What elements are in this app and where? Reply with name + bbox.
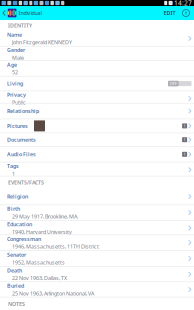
button[interactable]: Education bbox=[0, 221, 194, 235]
button[interactable]: Pictures bbox=[0, 119, 194, 133]
staticText: 1940, Harvard University bbox=[12, 228, 72, 235]
staticText: EDIT bbox=[163, 9, 175, 17]
button[interactable]: Age bbox=[0, 61, 194, 76]
staticText: EVENTS/FACTS bbox=[8, 179, 44, 186]
button[interactable]: Back bbox=[0, 6, 8, 20]
staticText: Pictures bbox=[7, 122, 28, 129]
staticText: 1 bbox=[184, 152, 186, 157]
button[interactable]: Birth bbox=[0, 205, 194, 221]
staticText: 1946, Massachusetts, 11TH District bbox=[12, 243, 99, 250]
button[interactable]: Congressman bbox=[0, 235, 194, 251]
button[interactable]: Name bbox=[0, 31, 194, 46]
staticText: NOTES bbox=[8, 300, 25, 307]
button[interactable]: Religion bbox=[0, 188, 194, 205]
staticText: Gender bbox=[7, 46, 25, 54]
staticText: Tags bbox=[7, 162, 19, 169]
button[interactable]: Gender bbox=[0, 46, 194, 61]
staticText: Privacy bbox=[7, 91, 26, 98]
button[interactable]: Documents bbox=[0, 133, 194, 147]
button[interactable]: Living bbox=[0, 76, 194, 91]
staticText: 29 May 1917, Brookline, MA. bbox=[12, 213, 78, 220]
staticText: Education bbox=[7, 221, 32, 228]
staticText: Buried bbox=[7, 282, 24, 289]
staticText: Audio Files bbox=[7, 151, 36, 158]
staticText: Congressman bbox=[7, 235, 41, 242]
staticText: Age bbox=[7, 61, 17, 68]
button[interactable]: Senator bbox=[0, 251, 194, 267]
staticText: Relationship bbox=[7, 107, 39, 115]
button[interactable]: Buried bbox=[0, 282, 194, 297]
staticText: Living bbox=[7, 80, 23, 87]
staticText: Name bbox=[7, 31, 22, 38]
staticText: 1952, Massachusetts bbox=[12, 259, 65, 266]
staticText: Senator bbox=[7, 251, 26, 258]
button[interactable]: Death bbox=[0, 267, 194, 282]
staticText: 52 bbox=[12, 69, 18, 76]
button[interactable]: Privacy bbox=[0, 91, 194, 103]
staticText: John Fitzgerald KENNEDY bbox=[12, 39, 72, 46]
staticText: 25 Nov 1963, Arlington National, VA bbox=[12, 290, 94, 297]
staticText: Religion bbox=[7, 193, 28, 200]
staticText: 1 bbox=[184, 123, 186, 128]
staticText: Individual bbox=[19, 9, 42, 17]
staticText: Birth bbox=[7, 205, 20, 212]
button[interactable]: EDIT bbox=[160, 6, 178, 20]
button[interactable]: Relationship bbox=[0, 103, 194, 119]
staticText: Death bbox=[7, 267, 22, 274]
button[interactable]: Tags bbox=[0, 162, 194, 176]
button[interactable]: More options bbox=[178, 6, 194, 20]
staticText: 22 Nov 1963, Dallas, TX bbox=[12, 274, 67, 282]
staticText: 1 bbox=[184, 137, 186, 142]
staticText: IDENTITY bbox=[8, 22, 32, 29]
staticText: Public bbox=[12, 99, 26, 106]
staticText: Male bbox=[12, 54, 24, 61]
staticText: OFF bbox=[170, 81, 177, 86]
staticText: 14:27 bbox=[174, 0, 192, 7]
staticText: 1 bbox=[12, 170, 15, 177]
staticText: Documents bbox=[7, 136, 36, 143]
button[interactable]: Audio Files bbox=[0, 147, 194, 162]
